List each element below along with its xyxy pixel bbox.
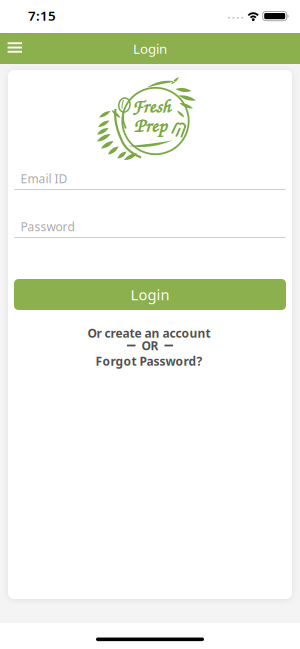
button[interactable]: Forgot Password?: [92, 351, 205, 371]
staticText: 7:15: [28, 7, 56, 24]
staticText: Forgot Password?: [95, 353, 202, 369]
staticText: Email ID: [20, 170, 67, 186]
button[interactable]: Menu: [0, 36, 30, 61]
button[interactable]: Password: [14, 214, 285, 238]
staticText: Or create an account: [87, 325, 210, 341]
staticText: OR: [141, 337, 158, 353]
staticText: Fresh: [131, 93, 170, 118]
staticText: Login: [130, 285, 169, 304]
button[interactable]: Login: [14, 279, 286, 310]
button[interactable]: Email ID: [14, 166, 285, 190]
button[interactable]: Or create an account: [84, 323, 213, 343]
staticText: Prep: [134, 112, 167, 138]
staticText: Login: [133, 40, 167, 57]
staticText: Password: [20, 218, 74, 234]
